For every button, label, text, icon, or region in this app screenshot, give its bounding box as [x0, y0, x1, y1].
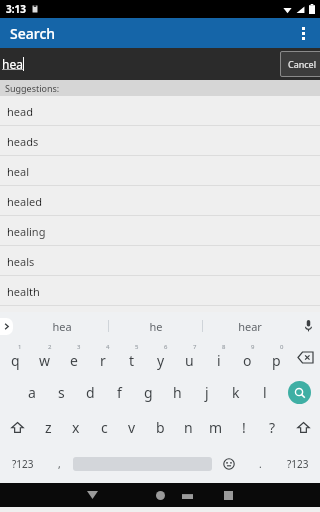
button[interactable]: a: [17, 375, 47, 410]
staticText: 1: [18, 343, 22, 351]
button[interactable]: m: [202, 410, 230, 445]
staticText: .: [259, 457, 262, 471]
staticText: q: [11, 351, 20, 370]
button[interactable]: More options: [286, 18, 320, 48]
button[interactable]: ?: [258, 410, 286, 445]
button[interactable]: Shift: [0, 410, 34, 445]
button[interactable]: Expand suggestions: [0, 318, 13, 335]
button[interactable]: Voice input: [296, 312, 320, 340]
staticText: 2: [48, 343, 52, 351]
button[interactable]: l: [250, 375, 279, 410]
button[interactable]: f: [105, 375, 134, 410]
button[interactable]: n: [174, 410, 202, 445]
staticText: g: [144, 383, 153, 402]
staticText: 6: [164, 343, 168, 351]
button[interactable]: 8: [204, 340, 233, 375]
staticText: 4: [106, 343, 110, 351]
staticText: z: [45, 418, 52, 437]
button[interactable]: he: [109, 312, 202, 340]
button[interactable]: s: [47, 375, 76, 410]
button[interactable]: 4: [88, 340, 117, 375]
staticText: 3:13: [6, 2, 26, 16]
button[interactable]: c: [90, 410, 118, 445]
staticText: u: [185, 351, 194, 370]
staticText: ,: [58, 457, 61, 471]
button[interactable]: heal: [0, 156, 320, 186]
staticText: i: [217, 351, 221, 370]
staticText: c: [101, 418, 108, 437]
button[interactable]: .: [245, 445, 275, 483]
staticText: hea: [52, 319, 72, 334]
button[interactable]: 9: [233, 340, 262, 375]
button[interactable]: 1: [0, 340, 30, 375]
staticText: 7: [193, 343, 197, 351]
staticText: he: [149, 319, 163, 334]
button[interactable]: h: [163, 375, 192, 410]
staticText: ?: [269, 418, 276, 437]
button[interactable]: head: [0, 96, 320, 126]
button[interactable]: k: [221, 375, 250, 410]
button[interactable]: Recent apps: [216, 483, 240, 507]
staticText: o: [243, 351, 252, 370]
staticText: 9: [251, 343, 255, 351]
staticText: d: [86, 383, 95, 402]
staticText: hea: [2, 56, 23, 72]
button[interactable]: ?123: [275, 445, 320, 483]
button[interactable]: Switch keyboard: [176, 484, 198, 506]
staticText: healed: [7, 194, 42, 209]
staticText: heal: [7, 164, 30, 179]
button[interactable]: !: [230, 410, 258, 445]
button[interactable]: ,: [46, 445, 73, 483]
staticText: heads: [7, 134, 39, 149]
button[interactable]: ?123: [0, 445, 46, 483]
button[interactable]: 6: [146, 340, 175, 375]
button[interactable]: Emoji: [212, 445, 245, 483]
staticText: 5: [135, 343, 139, 351]
button[interactable]: g: [134, 375, 163, 410]
button[interactable]: 3: [59, 340, 88, 375]
button[interactable]: Home: [148, 483, 172, 507]
button[interactable]: 7: [175, 340, 204, 375]
button[interactable]: heals: [0, 246, 320, 276]
button[interactable]: d: [76, 375, 105, 410]
staticText: heals: [7, 254, 35, 269]
button[interactable]: b: [146, 410, 174, 445]
staticText: l: [263, 383, 267, 402]
staticText: a: [28, 383, 36, 402]
staticText: y: [157, 351, 165, 370]
button[interactable]: Cancel: [280, 51, 320, 77]
button[interactable]: healed: [0, 186, 320, 216]
staticText: s: [58, 383, 65, 402]
staticText: j: [205, 383, 209, 402]
staticText: health: [7, 284, 40, 299]
staticText: e: [70, 351, 78, 370]
button[interactable]: healing: [0, 216, 320, 246]
button[interactable]: Shift: [286, 410, 320, 445]
button[interactable]: health: [0, 276, 320, 306]
button[interactable]: x: [62, 410, 90, 445]
staticText: 8: [222, 343, 226, 351]
staticText: b: [156, 418, 165, 437]
button[interactable]: Search: [279, 375, 320, 410]
staticText: !: [242, 418, 246, 437]
button[interactable]: hear: [203, 312, 296, 340]
staticText: h: [173, 383, 182, 402]
button[interactable]: 5: [117, 340, 146, 375]
button[interactable]: hea: [16, 312, 108, 340]
staticText: Search: [10, 24, 56, 43]
staticText: ?123: [12, 457, 34, 471]
button[interactable]: v: [118, 410, 146, 445]
button[interactable]: 0: [262, 340, 291, 375]
button[interactable]: heads: [0, 126, 320, 156]
staticText: m: [209, 418, 223, 437]
button[interactable]: Backspace: [291, 340, 320, 375]
button[interactable]: z: [34, 410, 62, 445]
staticText: n: [184, 418, 193, 437]
button[interactable]: j: [192, 375, 221, 410]
staticText: k: [232, 383, 240, 402]
button[interactable]: 2: [30, 340, 59, 375]
staticText: healing: [7, 224, 46, 239]
button[interactable]: Hide keyboard: [80, 483, 104, 507]
staticText: v: [128, 418, 136, 437]
